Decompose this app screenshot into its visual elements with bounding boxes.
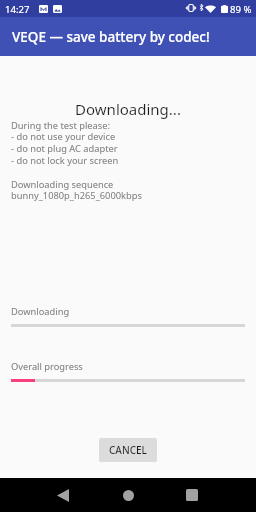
button[interactable]: CANCEL (99, 438, 157, 462)
staticText: Downloading (11, 305, 70, 318)
staticText: 89 % (230, 3, 252, 16)
staticText: VEQE — save battery by codec! (12, 28, 210, 46)
staticText: Downloading sequence bunny_1080p_h265_60… (11, 178, 142, 202)
staticText: Overall progress (11, 360, 83, 373)
staticText: 14:27 (5, 3, 30, 16)
button[interactable]: Home (107, 478, 149, 512)
staticText: During the test please: - do not use you… (11, 119, 119, 167)
button[interactable]: VEQE — save battery by codec! (0, 17, 256, 56)
button[interactable]: Recent apps (171, 478, 213, 512)
button[interactable]: Back (42, 478, 84, 512)
staticText: CANCEL (109, 443, 147, 457)
staticText: Downloading... (0, 99, 256, 119)
